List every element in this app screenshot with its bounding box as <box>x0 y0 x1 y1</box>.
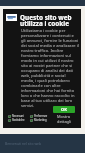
staticText: Preferenze <box>34 114 48 118</box>
button[interactable]: Preferenze <box>30 114 48 118</box>
button[interactable]: Statistiche <box>8 118 25 122</box>
staticText: Statistiche <box>12 118 25 122</box>
staticText: Questo sito web utilizza i cookie <box>20 13 72 28</box>
staticText: Necessari <box>12 114 24 118</box>
button[interactable]: Marketing <box>30 118 47 122</box>
button[interactable]: Necessari <box>8 114 24 118</box>
button[interactable]: OK <box>53 106 75 113</box>
staticText: Benvenuti nel sito web <box>5 141 42 146</box>
staticText: OK <box>61 107 67 112</box>
staticText: Marketing <box>34 118 47 122</box>
staticText: Utilizziamo i cookie per personalizzare … <box>21 28 79 108</box>
button[interactable]: Mostra dettagli <box>57 114 71 124</box>
